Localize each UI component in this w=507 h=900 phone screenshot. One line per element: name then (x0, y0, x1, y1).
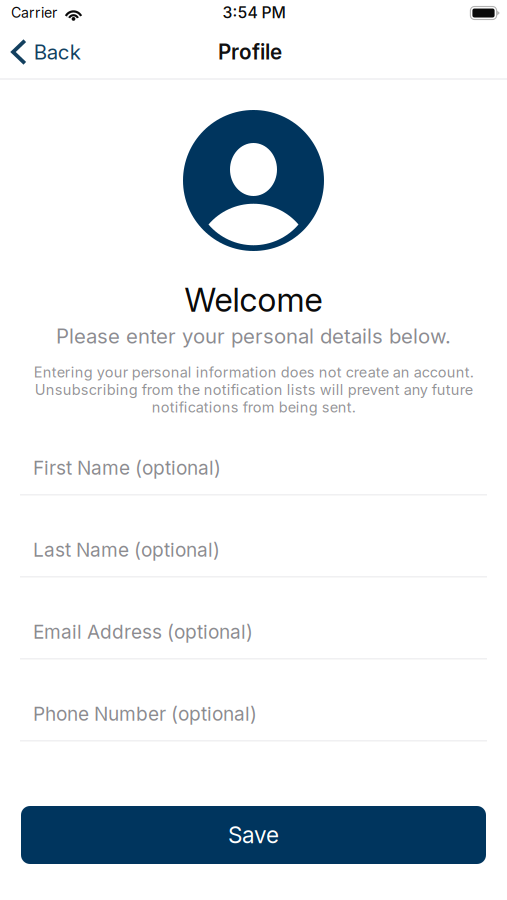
staticText: First Name (optional) (33, 456, 221, 479)
staticText: Email Address (optional) (33, 620, 253, 643)
staticText: Please enter your personal details below… (56, 324, 451, 348)
staticText: Profile (218, 39, 282, 64)
button[interactable]: Save (21, 806, 486, 864)
staticText: Last Name (optional) (33, 538, 220, 561)
staticText: Welcome (184, 280, 322, 320)
staticText: Phone Number (optional) (33, 702, 257, 725)
staticText: Carrier (11, 4, 57, 21)
staticText: Back (34, 40, 81, 64)
button[interactable]: Phone Number (optional) (0, 659, 507, 741)
button[interactable]: Email Address (optional) (0, 577, 507, 659)
button[interactable]: Back (0, 31, 91, 73)
button[interactable]: Last Name (optional) (0, 495, 507, 577)
staticText: Entering your personal information does … (33, 363, 473, 416)
button[interactable]: First Name (optional) (0, 413, 507, 495)
staticText: Save (228, 821, 279, 849)
staticText: 3:54 PM (222, 3, 285, 22)
